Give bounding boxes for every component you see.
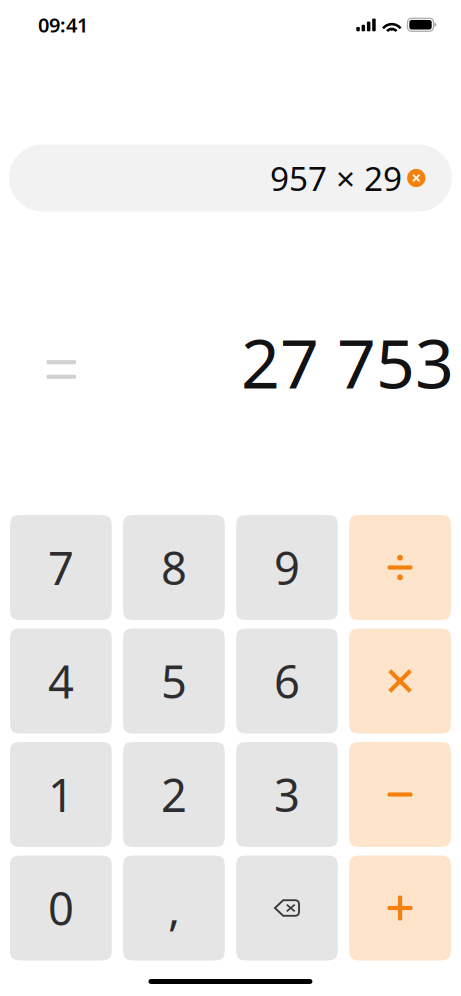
staticText: 4 — [48, 651, 74, 711]
button[interactable]: Backspace — [236, 855, 338, 960]
button[interactable]: 6 — [236, 628, 338, 733]
staticText: 1 — [48, 764, 74, 825]
button[interactable]: Subtract — [349, 742, 451, 847]
staticText: 6 — [274, 651, 300, 711]
button[interactable]: 9 — [236, 515, 338, 620]
button[interactable]: 5 — [123, 628, 225, 733]
button[interactable]: 0 — [10, 855, 112, 960]
button[interactable]: , — [123, 855, 225, 960]
button[interactable]: Divide — [349, 515, 451, 620]
staticText: 9 — [274, 537, 300, 598]
staticText: , — [168, 878, 180, 938]
staticText: 7 — [48, 537, 74, 598]
staticText: 09:41 — [38, 11, 88, 38]
button[interactable]: 3 — [236, 742, 338, 847]
staticText: 2 — [161, 764, 187, 825]
button[interactable]: Multiply — [349, 628, 451, 733]
button[interactable]: 1 — [10, 742, 112, 847]
button[interactable]: 8 — [123, 515, 225, 620]
staticText: 3 — [274, 764, 300, 825]
staticText: 27 753 — [241, 317, 454, 407]
staticText: 0 — [48, 878, 74, 938]
staticText: 957 × 29 — [270, 156, 402, 200]
button[interactable]: 2 — [123, 742, 225, 847]
button[interactable]: Clear — [407, 161, 425, 195]
staticText: 8 — [161, 537, 187, 598]
button[interactable]: 4 — [10, 628, 112, 733]
button[interactable]: 7 — [10, 515, 112, 620]
staticText: 5 — [161, 651, 187, 711]
button[interactable]: Add — [349, 855, 451, 960]
button[interactable]: 957 × 29 — [9, 144, 452, 211]
